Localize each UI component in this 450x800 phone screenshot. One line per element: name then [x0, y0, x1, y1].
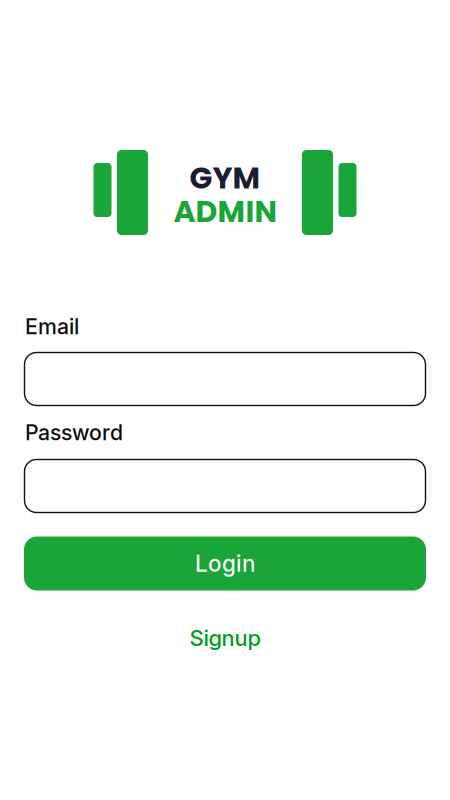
staticText: Email: [25, 314, 79, 339]
button[interactable]: Password: [24, 459, 425, 512]
staticText: Login: [195, 550, 255, 577]
staticText: Password: [25, 420, 123, 445]
button[interactable]: Signup: [181, 617, 268, 659]
staticText: ADMIN: [173, 190, 277, 232]
staticText: Signup: [189, 625, 260, 651]
button[interactable]: Email: [24, 352, 425, 405]
staticText: GYM: [189, 157, 260, 199]
button[interactable]: Login: [24, 536, 426, 590]
